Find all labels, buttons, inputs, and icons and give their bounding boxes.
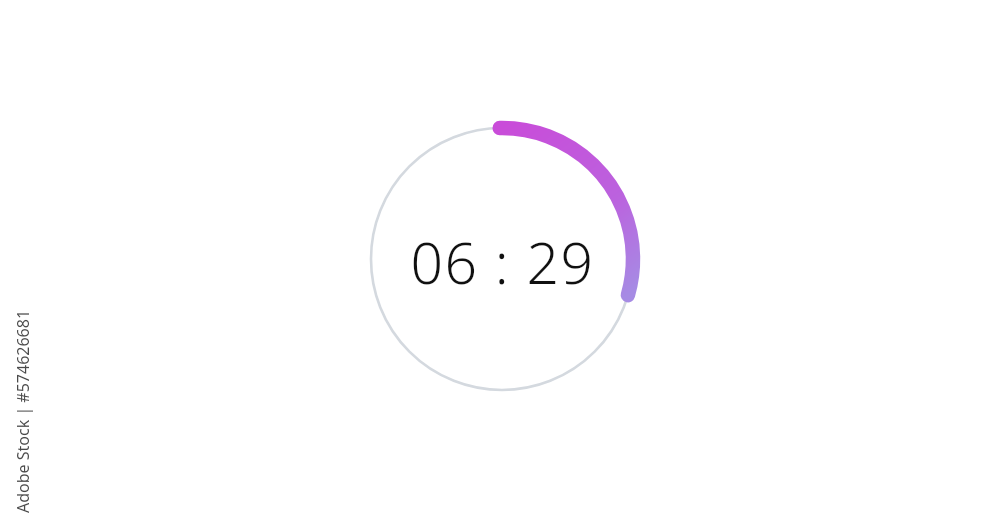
staticText: 06 : 29: [410, 223, 595, 295]
button[interactable]: Remaining time 06 minutes 29 seconds: [352, 223, 652, 295]
staticText: Adobe Stock | #574626681: [12, 309, 34, 513]
